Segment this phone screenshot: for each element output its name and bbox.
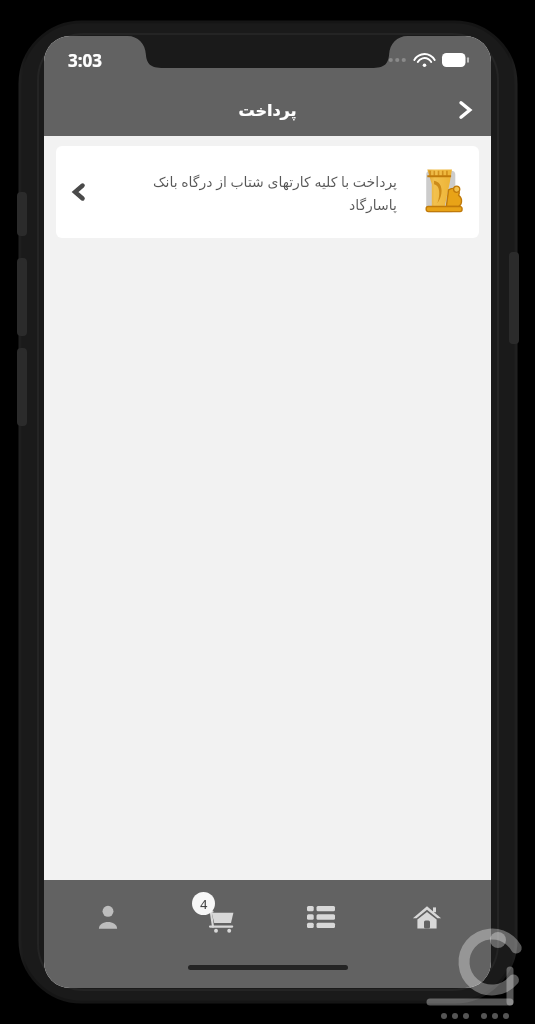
button[interactable]: Home: [384, 880, 470, 954]
staticText: پرداخت: [238, 101, 297, 120]
button[interactable]: Cart, 4 items: [171, 880, 257, 954]
button[interactable]: Categories: [278, 880, 364, 954]
staticText: پرداخت با کلیه کارتهای شتاب از درگاه بان…: [102, 172, 397, 213]
button[interactable]: Back: [439, 84, 491, 136]
button[interactable]: پرداخت با کلیه کارتهای شتاب از درگاه بان…: [56, 146, 479, 238]
button[interactable]: Profile: [65, 880, 151, 954]
staticText: 3:03: [68, 49, 102, 72]
staticText: 4: [200, 895, 208, 913]
